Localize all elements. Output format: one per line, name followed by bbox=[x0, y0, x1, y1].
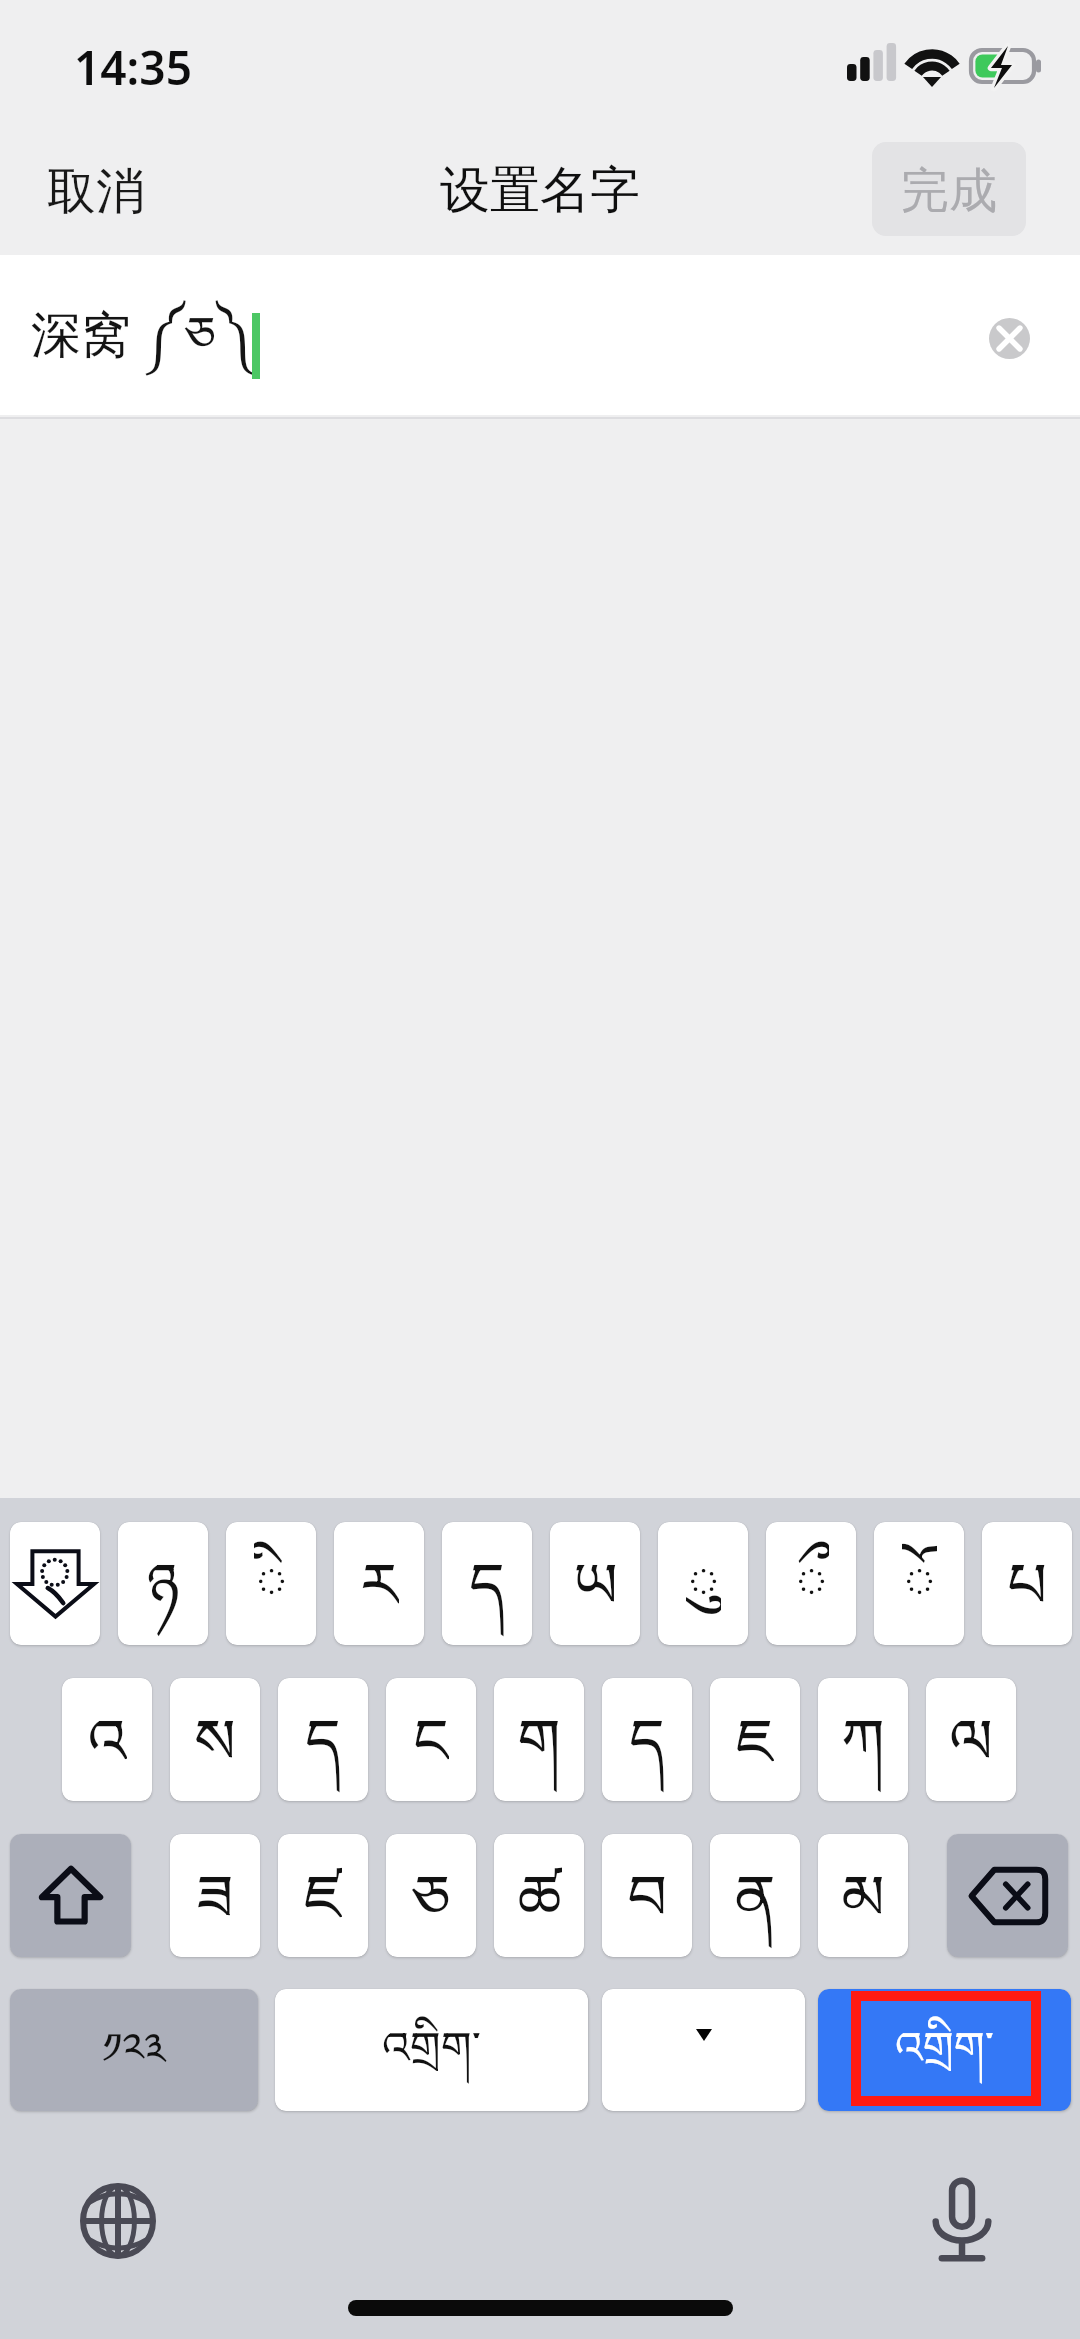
staticText: ཡ bbox=[573, 1522, 618, 1639]
button[interactable]: ཟ bbox=[170, 1834, 260, 1957]
staticText: ུ bbox=[686, 1522, 721, 1639]
button[interactable] bbox=[947, 1834, 1068, 1957]
button[interactable]: 完成 bbox=[872, 142, 1026, 236]
button[interactable]: ོ bbox=[874, 1522, 964, 1645]
staticText: ད bbox=[629, 1678, 665, 1795]
staticText: ཛ bbox=[304, 1834, 342, 1951]
staticText: བ bbox=[627, 1834, 667, 1951]
button[interactable]: ལ bbox=[926, 1678, 1016, 1801]
staticText: པ bbox=[1007, 1522, 1047, 1639]
button[interactable]: ི bbox=[226, 1522, 316, 1645]
staticText: ི bbox=[254, 1522, 289, 1639]
staticText: 完成 bbox=[901, 161, 997, 221]
staticText: ༡༢༣ bbox=[102, 2001, 166, 2119]
button[interactable]: ཉ bbox=[118, 1522, 208, 1645]
button[interactable] bbox=[10, 1834, 131, 1957]
staticText: ད bbox=[469, 1522, 505, 1639]
staticText: ཚ bbox=[517, 1834, 562, 1951]
staticText: 取消 bbox=[47, 161, 145, 223]
button[interactable] bbox=[10, 1522, 100, 1645]
button[interactable]: Next keyboard bbox=[73, 2176, 163, 2266]
staticText: ཟ bbox=[196, 1834, 234, 1951]
button[interactable]: འ bbox=[62, 1678, 152, 1801]
staticText: ས bbox=[194, 1678, 236, 1795]
button[interactable]: ར bbox=[334, 1522, 424, 1645]
button[interactable]: Dictate bbox=[917, 2175, 1007, 2265]
button[interactable]: ྀ bbox=[766, 1522, 856, 1645]
staticText: ག bbox=[517, 1678, 561, 1795]
button[interactable]: Clear text bbox=[989, 318, 1030, 359]
button[interactable]: པ bbox=[982, 1522, 1072, 1645]
button[interactable]: ཀ bbox=[818, 1678, 908, 1801]
button[interactable]: Confirm bbox=[818, 1989, 1071, 2111]
button[interactable]: ཚ bbox=[494, 1834, 584, 1957]
button[interactable]: ཛ bbox=[278, 1834, 368, 1957]
staticText: མ bbox=[841, 1834, 885, 1951]
button[interactable]: ང bbox=[386, 1678, 476, 1801]
staticText: ད bbox=[305, 1678, 341, 1795]
button[interactable]: Space bbox=[275, 1989, 588, 2111]
button[interactable]: ུ bbox=[658, 1522, 748, 1645]
staticText: ར bbox=[360, 1522, 399, 1639]
button[interactable]: ཅ bbox=[386, 1834, 476, 1957]
staticText: འ bbox=[87, 1678, 127, 1795]
button[interactable]: ད bbox=[278, 1678, 368, 1801]
staticText: ཇ bbox=[736, 1678, 774, 1795]
button[interactable]: ན bbox=[710, 1834, 800, 1957]
staticText: འགྲིག་ bbox=[382, 1998, 481, 2120]
button[interactable]: ཡ bbox=[550, 1522, 640, 1645]
staticText: ང bbox=[413, 1678, 449, 1795]
staticText: འགྲིག་ bbox=[895, 1998, 994, 2120]
staticText: ཉ bbox=[146, 1522, 180, 1639]
button[interactable]: ཇ bbox=[710, 1678, 800, 1801]
button[interactable]: ད bbox=[602, 1678, 692, 1801]
staticText: ཀ bbox=[841, 1678, 885, 1795]
button[interactable]: 取消 bbox=[31, 147, 161, 237]
button[interactable]: More bbox=[602, 1989, 805, 2111]
staticText: 深窝 ༼ཅ༽ bbox=[31, 279, 252, 420]
button[interactable]: ས bbox=[170, 1678, 260, 1801]
staticText: ན bbox=[734, 1834, 776, 1951]
staticText: ོ bbox=[902, 1522, 937, 1639]
staticText: ལ bbox=[949, 1678, 993, 1795]
button[interactable]: མ bbox=[818, 1834, 908, 1957]
button[interactable]: ད bbox=[442, 1522, 532, 1645]
button[interactable]: Numbers bbox=[10, 1989, 258, 2111]
staticText: 设置名字 bbox=[440, 159, 640, 222]
button[interactable]: ག bbox=[494, 1678, 584, 1801]
staticText: ཅ bbox=[411, 1834, 451, 1951]
staticText: ྀ bbox=[794, 1522, 829, 1639]
staticText: 14:35 bbox=[74, 36, 192, 99]
button[interactable]: བ bbox=[602, 1834, 692, 1957]
